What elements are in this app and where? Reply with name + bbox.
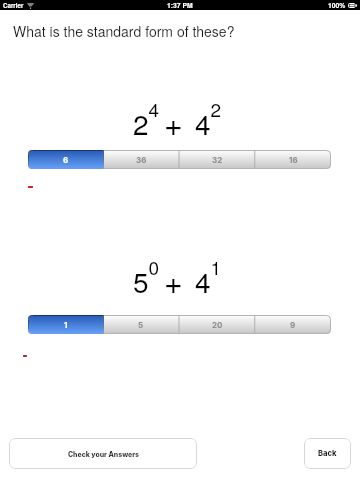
staticText: 100%: [328, 0, 346, 10]
staticText: 20: [212, 320, 223, 330]
staticText: Carrier: [3, 1, 24, 10]
staticText: 32: [212, 155, 223, 165]
button[interactable]: 32: [179, 150, 255, 169]
staticText: 6: [63, 155, 69, 165]
staticText: +: [164, 99, 183, 145]
button[interactable]: 36: [103, 150, 179, 169]
staticText: Check your Answers: [68, 450, 139, 458]
staticText: 1: [64, 320, 68, 330]
staticText: 41: [195, 253, 222, 301]
staticText: 36: [136, 155, 147, 165]
button[interactable]: Check your Answers: [9, 438, 197, 469]
staticText: 16: [289, 155, 298, 165]
staticText: 9: [290, 320, 296, 330]
button[interactable]: 1: [28, 315, 103, 334]
button[interactable]: 9: [255, 315, 331, 334]
staticText: 50: [133, 253, 160, 301]
button[interactable]: 20: [179, 315, 255, 334]
button[interactable]: 5: [103, 315, 179, 334]
staticText: 1:37 PM: [167, 0, 193, 10]
button[interactable]: 6: [28, 150, 103, 169]
button[interactable]: Back: [304, 438, 351, 469]
staticText: +: [164, 257, 183, 303]
staticText: 5: [138, 320, 144, 330]
staticText: 42: [195, 95, 222, 143]
staticText: 24: [133, 95, 160, 143]
staticText: Back: [318, 449, 337, 458]
button[interactable]: 16: [255, 150, 331, 169]
staticText: What is the standard form of these?: [13, 21, 235, 41]
